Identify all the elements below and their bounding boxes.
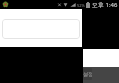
other: Sound off xyxy=(57,2,62,8)
other: Wi-Fi xyxy=(63,2,68,8)
other: App notification xyxy=(1,0,10,9)
button[interactable]: Search field xyxy=(2,19,80,39)
staticText: 52% xyxy=(77,3,85,8)
other: Signal strength xyxy=(70,2,76,8)
button[interactable]: 설정 xyxy=(83,68,92,80)
staticText: 오후 1:46 xyxy=(92,1,118,9)
other: Battery xyxy=(86,2,90,8)
staticText: 설정 xyxy=(83,71,92,77)
